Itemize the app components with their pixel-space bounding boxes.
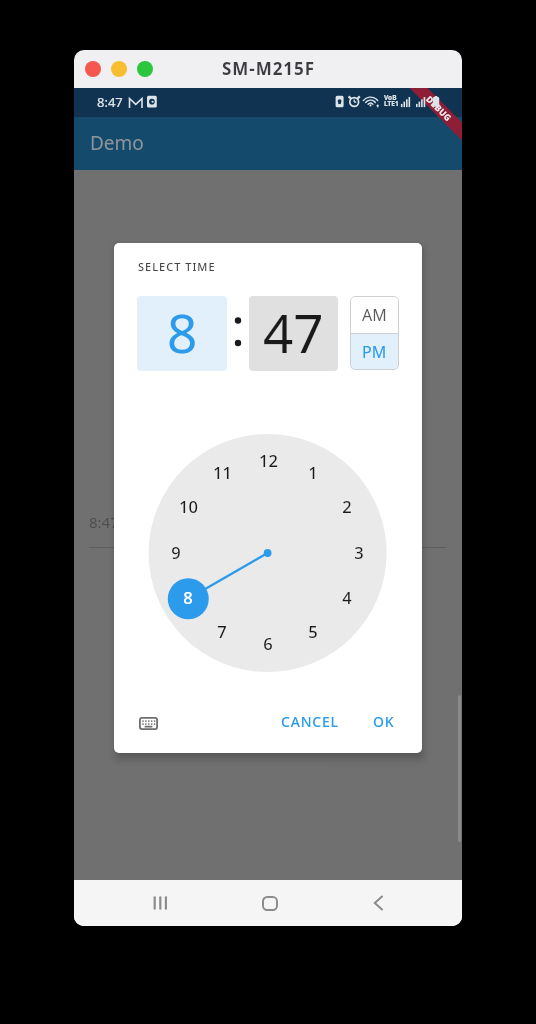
staticText: 11 bbox=[213, 461, 232, 483]
button[interactable]: 3 bbox=[344, 540, 374, 564]
button[interactable]: Recent apps bbox=[141, 885, 181, 921]
staticText: 3 bbox=[354, 541, 364, 563]
button[interactable]: 7 bbox=[207, 619, 237, 643]
button[interactable]: 8 bbox=[173, 585, 203, 609]
button[interactable]: PM bbox=[350, 334, 399, 370]
button[interactable]: AM bbox=[350, 296, 399, 333]
staticText: 8 bbox=[167, 296, 198, 368]
staticText: 47 bbox=[263, 296, 324, 368]
staticText: 12 bbox=[259, 449, 278, 471]
button[interactable]: Home bbox=[250, 885, 290, 921]
button[interactable]: 6 bbox=[253, 631, 283, 655]
staticText: 8:47 bbox=[97, 93, 123, 111]
staticText: PM bbox=[362, 341, 387, 363]
staticText: DEBUG bbox=[423, 93, 454, 124]
button[interactable]: 5 bbox=[298, 619, 328, 643]
staticText: 9 bbox=[171, 541, 181, 563]
staticText: 1 bbox=[308, 461, 318, 483]
staticText: 2 bbox=[342, 495, 352, 517]
button[interactable]: 2 bbox=[332, 494, 362, 518]
button[interactable]: Back bbox=[358, 885, 398, 921]
button[interactable]: Maximise bbox=[137, 61, 153, 77]
button[interactable]: CANCEL bbox=[272, 705, 348, 737]
button[interactable]: Close bbox=[85, 61, 101, 77]
button[interactable]: 9 bbox=[161, 540, 191, 564]
staticText: 5 bbox=[308, 620, 318, 642]
staticText: 4 bbox=[342, 586, 352, 608]
button[interactable]: 8 bbox=[137, 296, 227, 371]
staticText: CANCEL bbox=[281, 712, 339, 731]
staticText: 8:47 PM bbox=[89, 512, 146, 532]
button[interactable]: 1 bbox=[298, 460, 328, 484]
staticText: SELECT TIME bbox=[138, 259, 216, 274]
button[interactable]: Switch to text input bbox=[130, 707, 166, 739]
staticText: VoB bbox=[384, 93, 397, 102]
button[interactable]: Minimise bbox=[111, 61, 127, 77]
staticText: 6 bbox=[263, 632, 273, 654]
staticText: Demo bbox=[90, 130, 144, 156]
button[interactable]: OK bbox=[364, 705, 404, 737]
button[interactable]: 10 bbox=[173, 494, 203, 518]
staticText: OK bbox=[373, 712, 395, 731]
staticText: SM-M215F bbox=[222, 57, 315, 80]
button[interactable]: 4 bbox=[332, 585, 362, 609]
staticText: 8 bbox=[183, 586, 193, 608]
staticText: LTE1 bbox=[384, 99, 399, 108]
button[interactable]: 11 bbox=[207, 460, 237, 484]
button[interactable]: 12 bbox=[253, 448, 283, 472]
staticText: AM bbox=[362, 304, 387, 326]
staticText: 10 bbox=[179, 495, 198, 517]
staticText: 7 bbox=[217, 620, 227, 642]
button[interactable]: 47 bbox=[249, 296, 338, 371]
